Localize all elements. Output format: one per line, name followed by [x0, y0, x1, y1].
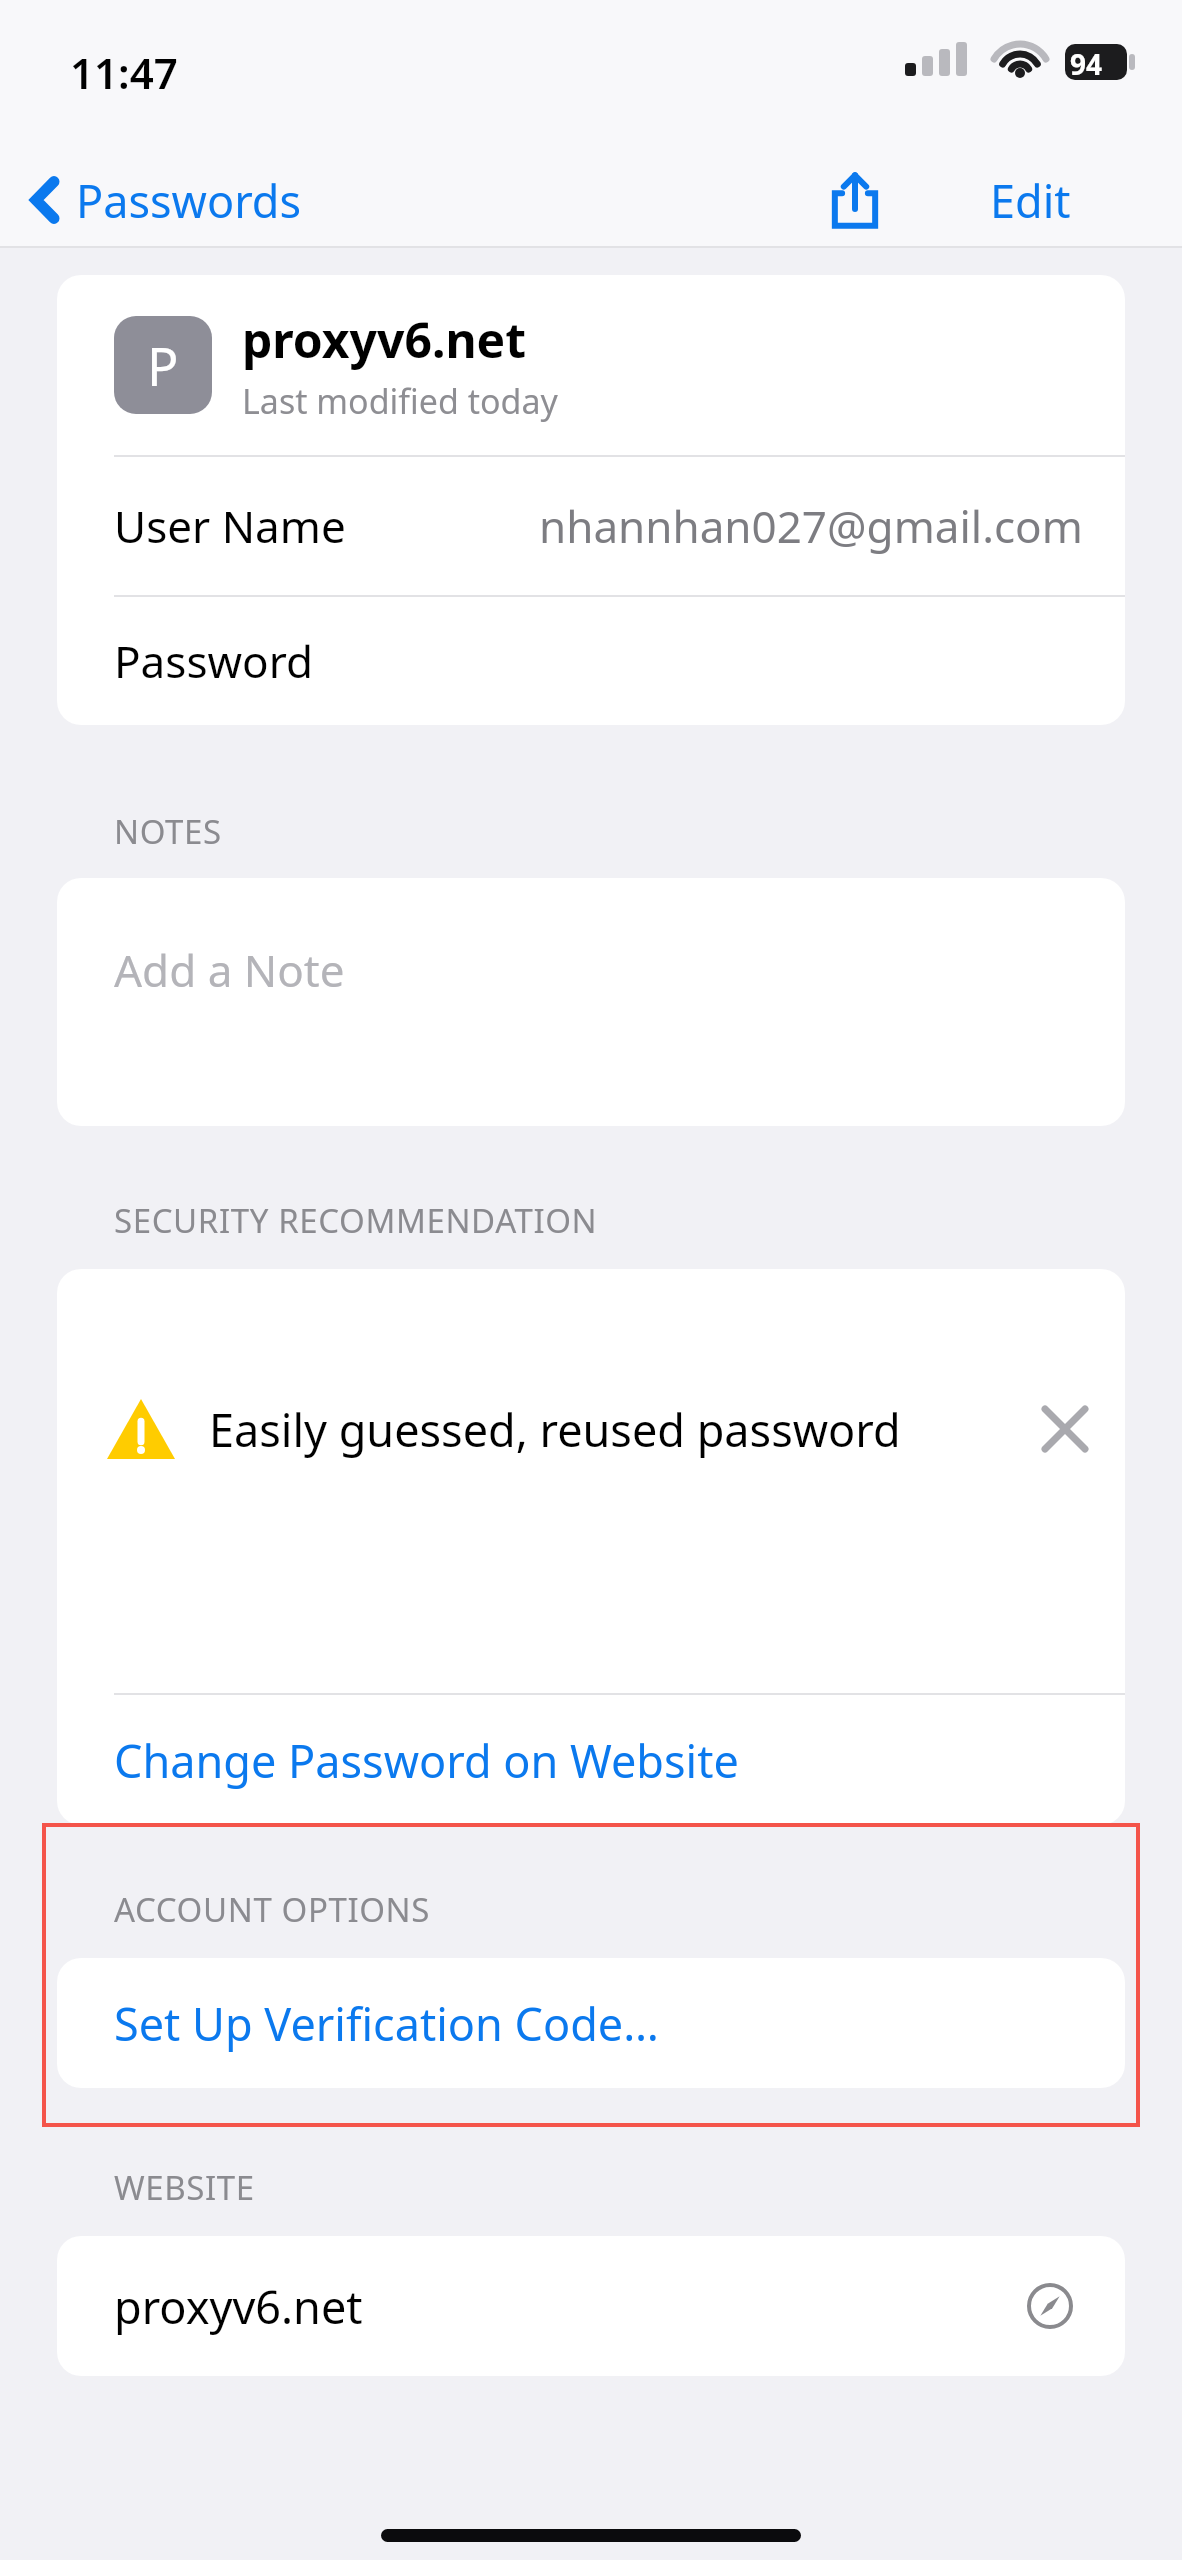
staticText: NOTES: [114, 809, 222, 854]
staticText: P: [147, 330, 179, 401]
staticText: proxyv6.net: [242, 307, 527, 372]
button[interactable]: Edit: [935, 152, 1125, 248]
staticText: WEBSITE: [114, 2165, 255, 2210]
staticText: ACCOUNT OPTIONS: [114, 1887, 430, 1932]
staticText: Passwords: [76, 170, 302, 231]
staticText: Password: [114, 631, 314, 691]
staticText: SECURITY RECOMMENDATION: [114, 1198, 598, 1243]
button[interactable]: proxyv6.net: [57, 2236, 1125, 2376]
staticText: Set Up Verification Code…: [114, 1993, 659, 2054]
staticText: Edit: [990, 170, 1071, 231]
button[interactable]: Passwords: [30, 152, 302, 248]
staticText: nhannhan027@gmail.com: [539, 496, 1083, 556]
staticText: Last modified today: [242, 378, 558, 424]
staticText: User Name: [114, 496, 346, 556]
staticText: proxyv6.net: [114, 2276, 363, 2337]
button[interactable]: Change Password on Website: [57, 1695, 1125, 1825]
button[interactable]: Share: [805, 152, 905, 248]
other: Open website: [1027, 2283, 1073, 2329]
button[interactable]: Dismiss: [1023, 1387, 1107, 1471]
staticText: Change Password on Website: [114, 1730, 739, 1791]
button[interactable]: User Name: [57, 457, 1125, 595]
button[interactable]: P: [57, 275, 1125, 455]
staticText: Easily guessed, reused password: [209, 1399, 901, 1460]
staticText: Add a Note: [114, 940, 345, 1000]
staticText: 11:47: [70, 44, 178, 101]
staticText: 94: [1070, 45, 1103, 83]
button[interactable]: Password: [57, 597, 1125, 725]
button[interactable]: Set Up Verification Code…: [57, 1958, 1125, 2088]
button[interactable]: Add a Note: [57, 878, 1125, 1126]
